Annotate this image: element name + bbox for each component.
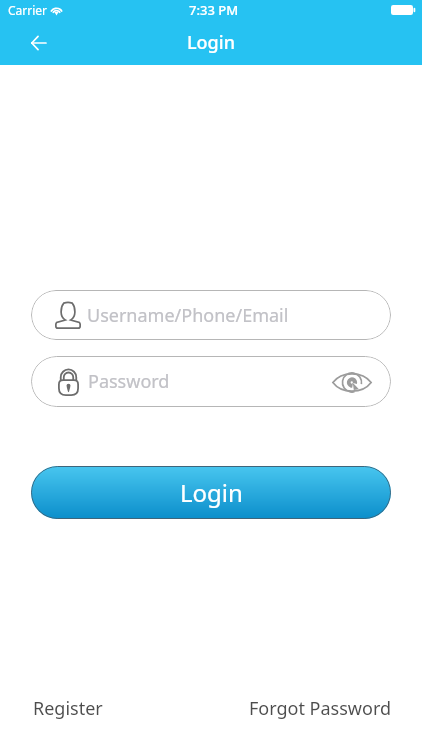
staticText: Carrier (8, 2, 48, 18)
button[interactable]: Username/Phone/Email (31, 290, 391, 340)
button[interactable]: Register (29, 690, 107, 727)
button[interactable]: Forgot Password (245, 690, 396, 727)
button[interactable]: Password (31, 356, 391, 407)
staticText: Forgot Password (249, 696, 392, 721)
staticText: Login (187, 30, 235, 55)
staticText: Register (33, 696, 103, 721)
staticText: Password (88, 369, 170, 394)
staticText: Username/Phone/Email (87, 303, 289, 328)
button[interactable]: Back (24, 29, 52, 57)
staticText: 7:33 PM (189, 1, 239, 19)
button[interactable]: Login (31, 466, 391, 519)
button[interactable]: Show password (331, 367, 373, 397)
staticText: Login (180, 476, 243, 509)
